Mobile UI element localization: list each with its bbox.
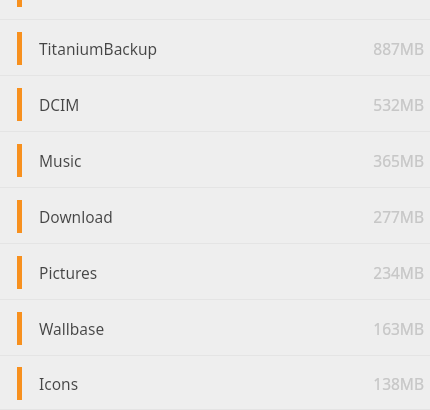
staticText: 138MB [373,373,424,394]
button[interactable] [0,0,430,20]
staticText: Music [39,150,82,171]
staticText: TitaniumBackup [39,38,158,59]
staticText: Icons [39,373,79,394]
button[interactable]: DCIM [0,76,430,132]
button[interactable]: Pictures [0,244,430,300]
button[interactable]: Wallbase [0,300,430,356]
staticText: 365MB [373,150,424,171]
staticText: 532MB [373,94,424,115]
staticText: DCIM [39,94,80,115]
button[interactable]: Download [0,188,430,244]
staticText: 163MB [373,318,424,339]
staticText: Download [39,206,113,227]
staticText: 277MB [373,206,424,227]
staticText: Pictures [39,262,98,283]
staticText: Wallbase [39,318,105,339]
button[interactable]: TitaniumBackup [0,20,430,76]
button[interactable]: Music [0,132,430,188]
staticText: 887MB [373,38,424,59]
button[interactable]: Icons [0,356,430,410]
staticText: 234MB [373,262,424,283]
